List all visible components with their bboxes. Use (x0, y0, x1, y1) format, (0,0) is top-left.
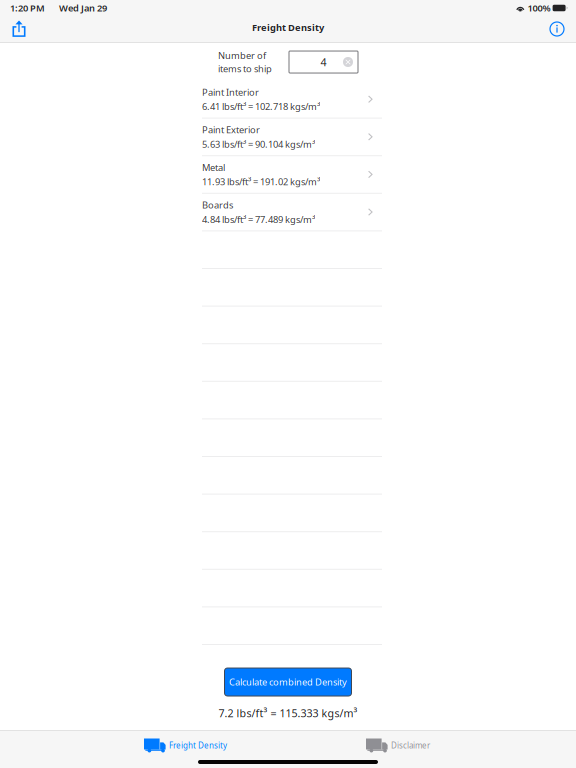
staticText: 5.63 lbs/ft³ = 90.104 kgs/m³ (202, 138, 315, 150)
button[interactable]: Disclaimer (366, 735, 466, 756)
button[interactable]: Share (4, 16, 34, 42)
button[interactable]: Freight Density (144, 735, 244, 756)
staticText: 100% (528, 2, 551, 14)
staticText: Calculate combined Density (229, 676, 347, 688)
button[interactable]: Paint Exterior (202, 119, 382, 156)
button[interactable]: Info (542, 16, 572, 42)
button[interactable]: Calculate combined Density (224, 668, 351, 696)
button[interactable]: Paint Interior (202, 81, 382, 119)
staticText: 4.84 lbs/ft³ = 77.489 kgs/m³ (202, 213, 315, 225)
staticText: Paint Exterior (202, 123, 260, 136)
staticText: 7.2 lbs/ft³ = 115.333 kgs/m³ (218, 706, 357, 720)
button[interactable]: Metal (202, 156, 382, 194)
staticText: 6.41 lbs/ft³ = 102.718 kgs/m³ (202, 100, 320, 113)
staticText: Number of (218, 49, 266, 61)
staticText: items to ship (218, 62, 272, 75)
staticText: Boards (202, 199, 233, 211)
staticText: Wed Jan 29 (59, 2, 107, 14)
staticText: 4 (320, 55, 326, 69)
staticText: Freight Density (169, 740, 227, 751)
staticText: 11.93 lbs/ft³ = 191.02 kgs/m³ (202, 175, 320, 188)
staticText: Paint Interior (202, 86, 259, 98)
staticText: Disclaimer (391, 740, 430, 751)
staticText: Metal (202, 161, 225, 173)
button[interactable]: Boards (202, 194, 382, 231)
button[interactable]: 4 (289, 51, 382, 73)
staticText: 1:20 PM (10, 2, 45, 14)
staticText: Freight Density (252, 21, 324, 34)
